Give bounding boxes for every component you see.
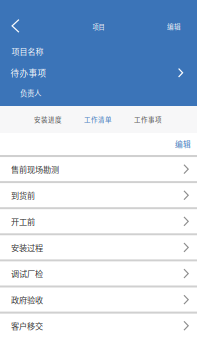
button[interactable]: 开工前 [0, 209, 197, 235]
button[interactable]: 安装过程 [0, 235, 197, 262]
button[interactable]: 政府验收 [0, 288, 197, 314]
staticText: 待办事项 [11, 67, 47, 79]
staticText: 售前现场勘测 [11, 163, 59, 175]
staticText: 工作清单 [84, 115, 112, 124]
button[interactable]: 工作清单 [84, 106, 112, 133]
staticText: 安装进度 [34, 115, 62, 124]
staticText: 编辑 [175, 138, 191, 150]
staticText: 负责人 [20, 87, 41, 98]
staticText: 到货前 [11, 189, 35, 201]
staticText: 项目 [92, 22, 104, 31]
button[interactable]: 待办事项 [0, 0, 197, 87]
button[interactable]: 安装进度 [34, 106, 62, 133]
button[interactable]: 客户移交 [0, 314, 197, 340]
button[interactable]: 到货前 [0, 183, 197, 209]
button[interactable]: 编辑 [175, 132, 197, 156]
button[interactable]: Back [0, 0, 29, 39]
button[interactable]: 售前现场勘测 [0, 157, 197, 183]
staticText: 项目名称 [11, 45, 43, 57]
button[interactable]: 工作事项 [134, 106, 162, 133]
staticText: 工作事项 [134, 115, 162, 124]
staticText: 开工前 [11, 215, 35, 227]
staticText: 安装过程 [11, 242, 43, 253]
staticText: 政府验收 [11, 294, 43, 306]
staticText: 客户移交 [11, 320, 43, 332]
button[interactable]: 调试厂检 [0, 262, 197, 288]
staticText: 编辑 [167, 22, 181, 31]
staticText: 调试厂检 [11, 268, 43, 279]
button[interactable]: 编辑 [0, 0, 197, 37]
